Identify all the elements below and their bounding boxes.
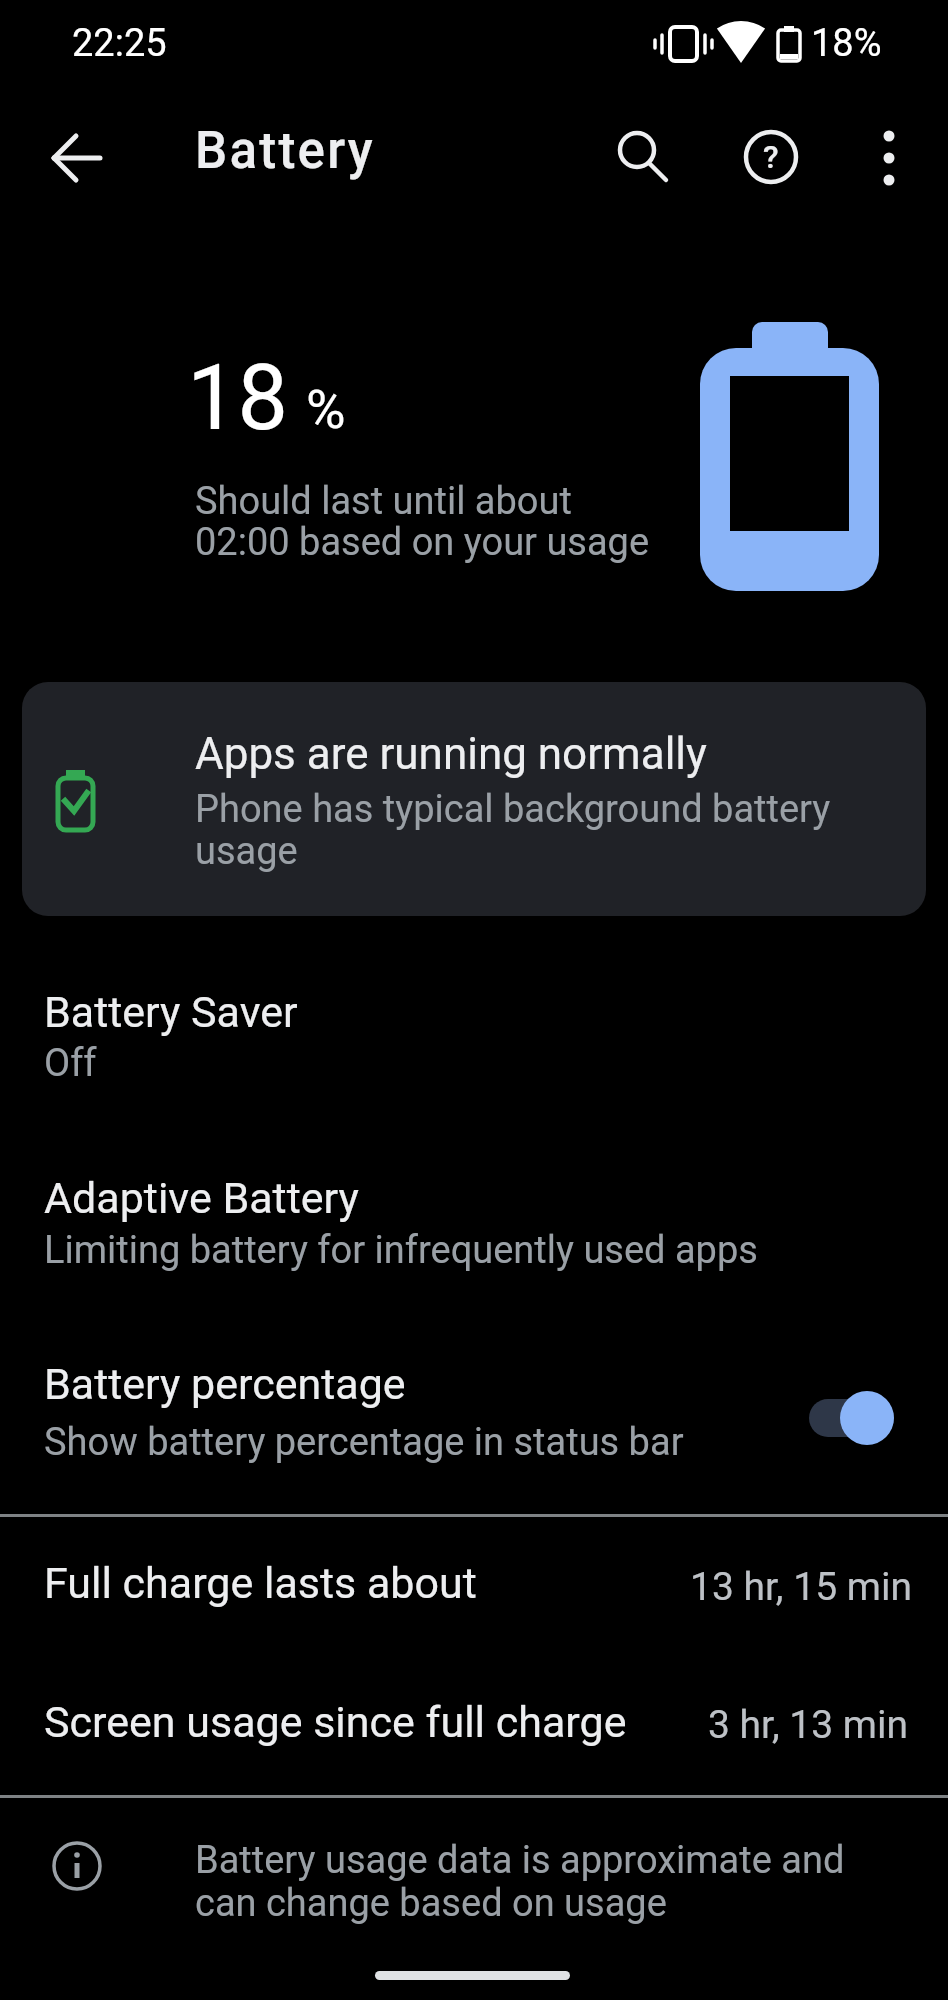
button[interactable]	[604, 121, 676, 193]
staticText: Battery percentage	[44, 1359, 406, 1409]
button[interactable]: Full charge lasts about	[0, 1517, 948, 1657]
button[interactable]: Battery Saver	[0, 955, 948, 1115]
button[interactable]	[40, 121, 112, 193]
staticText: usage	[195, 829, 298, 874]
staticText: 02:00 based on your usage	[195, 520, 650, 565]
staticText: Battery usage data is approximate and	[195, 1838, 845, 1883]
staticText: 22:25	[72, 21, 167, 66]
staticText: Off	[44, 1041, 97, 1086]
staticText: can change based on usage	[195, 1881, 667, 1926]
staticText: Battery Saver	[44, 987, 298, 1037]
staticText: Limiting battery for infrequently used a…	[44, 1228, 758, 1273]
staticText: 18%	[811, 21, 882, 66]
staticText: ?	[763, 138, 779, 176]
staticText: Screen usage since full charge	[44, 1697, 627, 1747]
staticText: Should last until about	[195, 479, 572, 524]
staticText: Battery	[195, 121, 375, 181]
staticText: 18	[187, 346, 289, 451]
button[interactable]: ?	[735, 121, 807, 193]
staticText: Show battery percentage in status bar	[44, 1420, 684, 1465]
staticText: 3 hr, 13 min	[708, 1702, 909, 1748]
button[interactable]: Adaptive Battery	[0, 1145, 948, 1305]
button[interactable]	[853, 121, 925, 193]
staticText: 13 hr, 15 min	[690, 1564, 912, 1610]
staticText: Full charge lasts about	[44, 1558, 477, 1608]
staticText: Phone has typical background battery	[195, 787, 831, 832]
button[interactable]: Screen usage since full charge	[0, 1657, 948, 1795]
button[interactable]: Battery percentage	[0, 1333, 948, 1493]
button[interactable]: Apps are running normally	[22, 682, 926, 916]
staticText: Adaptive Battery	[44, 1173, 359, 1223]
staticText: %	[306, 378, 346, 441]
staticText: Apps are running normally	[195, 728, 707, 780]
